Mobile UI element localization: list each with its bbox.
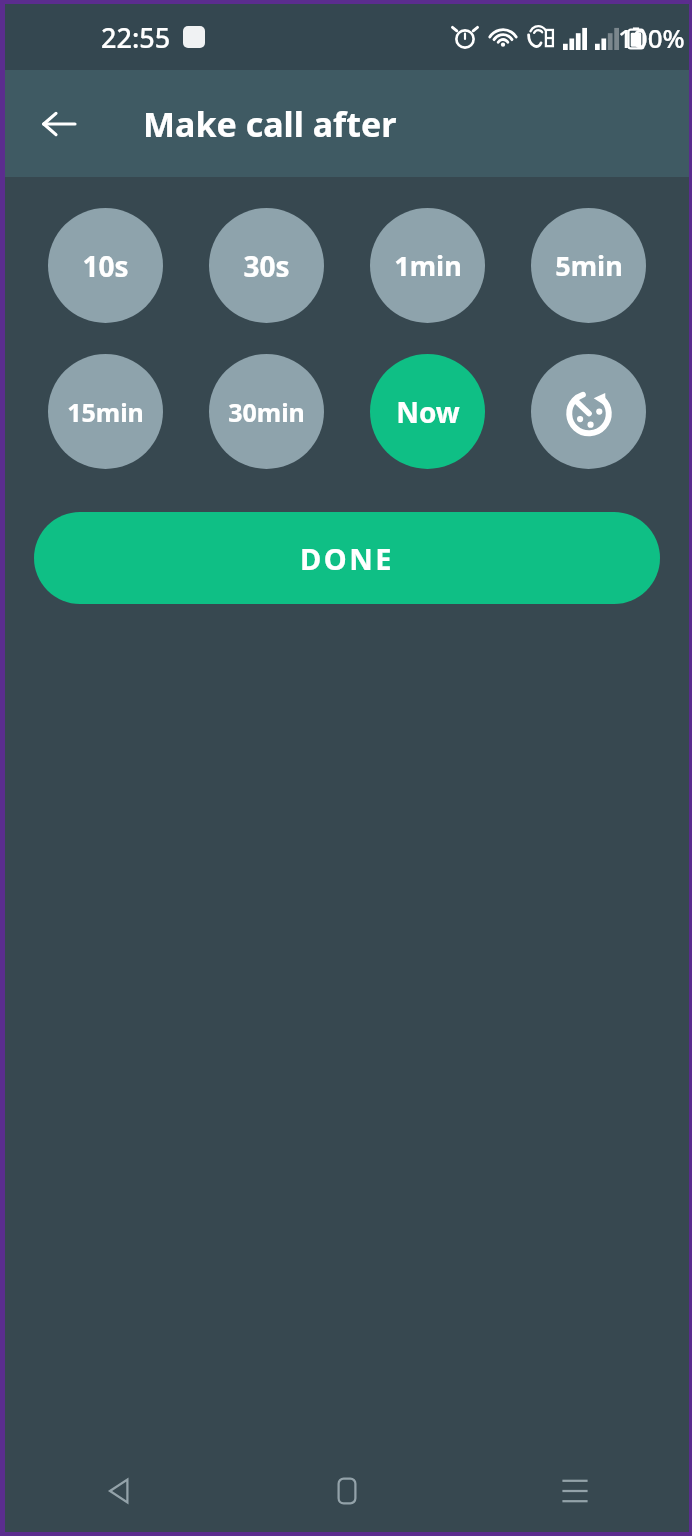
staticText: 5min — [555, 247, 623, 284]
staticText: DONE — [300, 539, 394, 578]
button[interactable]: Back — [5, 1450, 233, 1532]
button[interactable]: 5min — [531, 208, 646, 323]
staticText: 30min — [228, 395, 305, 429]
button[interactable]: 1min — [370, 208, 485, 323]
staticText: 10s — [82, 247, 129, 285]
staticText: Make call after — [143, 101, 397, 147]
button[interactable]: Recent apps — [461, 1450, 689, 1532]
button[interactable]: Back — [27, 92, 91, 156]
staticText: 22:55 — [101, 19, 171, 56]
button[interactable]: 30min — [209, 354, 324, 469]
button[interactable]: 15min — [48, 354, 163, 469]
button[interactable]: 30s — [209, 208, 324, 323]
staticText: 1min — [394, 247, 462, 284]
button[interactable]: Home — [233, 1450, 461, 1532]
button[interactable]: Custom time — [531, 354, 646, 469]
button[interactable]: DONE — [34, 512, 660, 604]
button[interactable]: Now — [370, 354, 485, 469]
staticText: Now — [396, 393, 460, 431]
staticText: 30s — [243, 247, 290, 285]
button[interactable]: 10s — [48, 208, 163, 323]
staticText: 100% — [618, 20, 685, 55]
staticText: 15min — [67, 395, 144, 429]
